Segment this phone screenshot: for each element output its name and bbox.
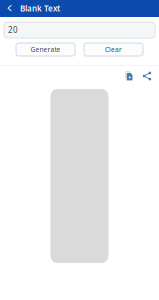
staticText: Blank Text <box>20 3 60 14</box>
button[interactable]: Clear <box>84 43 143 56</box>
button[interactable]: Copy <box>120 68 138 84</box>
button[interactable]: Back <box>0 0 20 17</box>
button[interactable]: Generate <box>16 43 75 56</box>
button[interactable]: Share <box>138 68 156 84</box>
staticText: Clear <box>105 45 122 54</box>
staticText: 20 <box>8 25 18 35</box>
staticText: Generate <box>30 45 60 54</box>
